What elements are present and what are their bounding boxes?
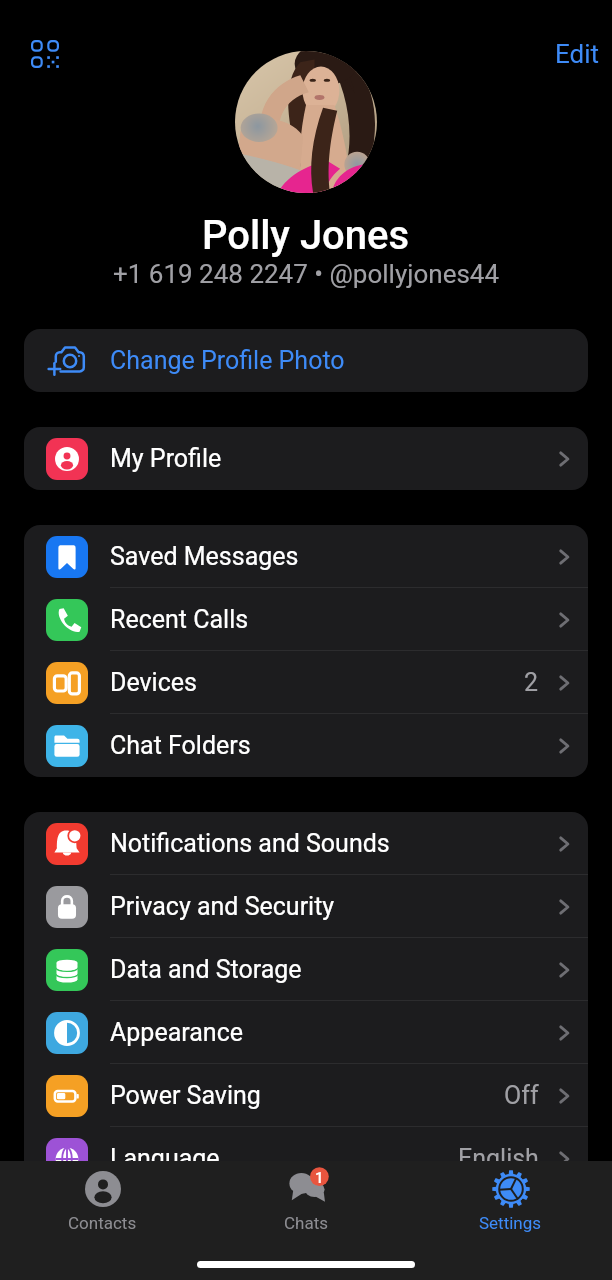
button[interactable]: 1 (204, 1161, 408, 1244)
staticText: Contacts (68, 1213, 137, 1233)
staticText: Appearance (110, 1018, 243, 1047)
staticText: Privacy and Security (110, 892, 335, 921)
staticText: Saved Messages (110, 542, 299, 571)
staticText: Chat Folders (110, 731, 251, 760)
staticText: +1 619 248 2247 • @pollyjones44 (113, 259, 500, 289)
staticText: 1 (315, 1169, 324, 1187)
button[interactable]: Notifications and Sounds (24, 812, 588, 875)
staticText: Data and Storage (110, 955, 302, 984)
button[interactable]: Language (24, 1127, 588, 1190)
button[interactable]: Data and Storage (24, 938, 588, 1001)
button[interactable]: Chat Folders (24, 714, 588, 777)
staticText: Settings (479, 1213, 542, 1233)
staticText: Notifications and Sounds (110, 829, 390, 858)
button[interactable]: Contacts (0, 1161, 204, 1244)
button[interactable]: My Profile (24, 427, 588, 490)
staticText: Change Profile Photo (110, 346, 345, 375)
button[interactable]: Recent Calls (24, 588, 588, 651)
button[interactable]: Appearance (24, 1001, 588, 1064)
staticText: English (458, 1144, 539, 1173)
staticText: Edit (555, 39, 600, 69)
button[interactable]: Privacy and Security (24, 875, 588, 938)
staticText: Language (110, 1144, 220, 1173)
button[interactable]: Saved Messages (24, 525, 588, 588)
staticText: My Profile (110, 444, 222, 473)
staticText: Off (504, 1081, 539, 1110)
staticText: 2 (524, 668, 539, 697)
button[interactable]: Devices (24, 651, 588, 714)
staticText: Recent Calls (110, 605, 249, 634)
staticText: Power Saving (110, 1081, 261, 1110)
staticText: Polly Jones (202, 212, 410, 259)
button[interactable]: Edit (547, 33, 608, 75)
button[interactable]: Power Saving (24, 1064, 588, 1127)
staticText: Devices (110, 668, 197, 697)
button[interactable]: Profile photo (235, 51, 377, 193)
button[interactable]: Settings (408, 1161, 612, 1244)
button[interactable]: Scan QR code (19, 28, 71, 80)
button[interactable]: Change Profile Photo (24, 329, 588, 392)
staticText: Chats (284, 1213, 329, 1233)
